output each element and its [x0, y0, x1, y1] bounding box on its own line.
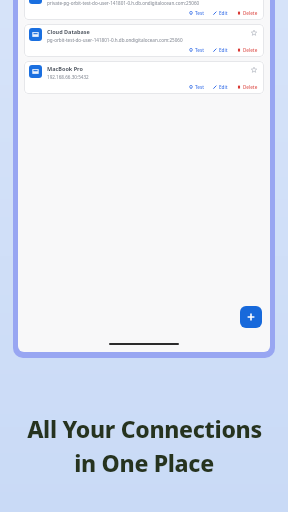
staticText: in One Place	[74, 447, 214, 478]
staticText: Delete	[243, 10, 258, 16]
staticText: MacBook Pro	[47, 65, 83, 72]
button[interactable]: MacBook Pro	[24, 61, 264, 94]
button[interactable]: Delete	[236, 83, 259, 91]
staticText: Delete	[243, 84, 258, 90]
staticText: Delete	[243, 47, 258, 53]
button[interactable]: Favorite	[249, 28, 259, 38]
staticText: All Your Connections	[27, 413, 262, 444]
button[interactable]: Edit	[212, 46, 229, 54]
button[interactable]: Edit	[212, 83, 229, 91]
button[interactable]: Add connection	[240, 306, 262, 328]
button[interactable]: Edit	[212, 9, 229, 17]
staticText: Edit	[219, 84, 228, 90]
staticText: Test	[195, 47, 204, 53]
button[interactable]: Delete	[236, 9, 259, 17]
button[interactable]: Test	[188, 9, 205, 17]
staticText: Edit	[219, 47, 228, 53]
button[interactable]: Test	[188, 83, 205, 91]
staticText: pg-orbit-test-do-user-141801-0.h.db.ondi…	[47, 37, 183, 43]
button[interactable]: Delete	[236, 46, 259, 54]
button[interactable]: Test	[188, 46, 205, 54]
staticText: 192.168.66.30:5432	[47, 74, 89, 80]
staticText: Test	[195, 84, 204, 90]
button[interactable]: Cloud Database	[24, 24, 264, 57]
staticText: Edit	[219, 10, 228, 16]
staticText: Cloud Database	[47, 28, 90, 35]
staticText: private-pg-orbit-test-do-user-141801-0.h…	[47, 0, 200, 6]
button[interactable]: SSH Tunnel VPC Network	[24, 0, 264, 20]
staticText: Test	[195, 10, 204, 16]
button[interactable]: Favorite	[249, 65, 259, 75]
